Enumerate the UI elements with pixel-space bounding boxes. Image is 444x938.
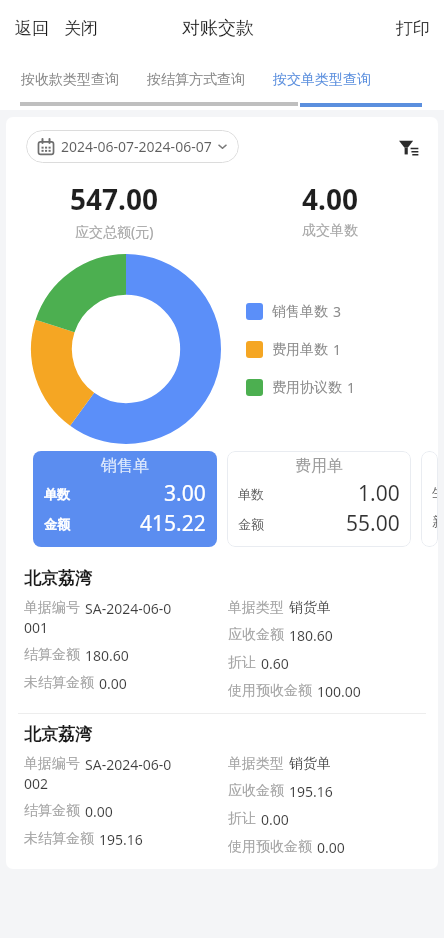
button[interactable]: 费用单: [227, 451, 411, 547]
button[interactable]: 按交单类型查询: [270, 63, 374, 97]
staticText: 195.16: [289, 782, 333, 801]
button[interactable]: 按结算方式查询: [144, 63, 248, 97]
staticText: 单据类型: [228, 755, 284, 773]
button[interactable]: Filter: [390, 129, 426, 165]
button[interactable]: 北京荔湾: [6, 558, 438, 713]
staticText: 单数: [238, 486, 264, 502]
button[interactable]: 关闭: [61, 11, 101, 46]
staticText: 金额: [44, 516, 70, 532]
staticText: 单据编号: [24, 755, 80, 773]
staticText: SA-2024-06-0: [85, 599, 172, 618]
staticText: 销货单: [289, 599, 331, 617]
staticText: 费用协议数: [272, 379, 342, 397]
staticText: 4.00: [302, 180, 358, 218]
staticText: 单数: [44, 486, 70, 502]
staticText: 100.00: [317, 682, 361, 701]
staticText: 金额: [238, 516, 264, 532]
staticText: 费用单: [238, 456, 400, 476]
staticText: 415.22: [140, 509, 206, 538]
staticText: 180.60: [85, 646, 129, 665]
staticText: 195.16: [99, 830, 143, 849]
staticText: 销货单: [289, 755, 331, 773]
staticText: 180.60: [289, 626, 333, 645]
staticText: 单据类型: [228, 599, 284, 617]
staticText: 应交总额(元): [75, 222, 154, 241]
staticText: 关闭: [64, 18, 98, 39]
button[interactable]: 按收款类型查询: [18, 63, 122, 97]
button[interactable]: 打印: [382, 9, 444, 48]
staticText: 返回: [15, 18, 49, 39]
staticText: 3: [333, 302, 342, 321]
staticText: 55.00: [346, 509, 400, 538]
staticText: 1: [347, 378, 356, 397]
staticText: 1: [333, 340, 342, 359]
staticText: 生: [432, 484, 438, 500]
staticText: 按结算方式查询: [147, 71, 245, 89]
staticText: 3.00: [164, 479, 206, 508]
button[interactable]: 生: [421, 451, 438, 547]
staticText: 使用预收金额: [228, 838, 312, 856]
staticText: 折让: [228, 654, 256, 672]
staticText: 未结算金额: [24, 830, 94, 848]
staticText: 0.60: [261, 654, 289, 673]
staticText: 0.00: [85, 802, 113, 821]
staticText: 新: [432, 513, 438, 529]
staticText: 折让: [228, 810, 256, 828]
staticText: 北京荔湾: [24, 724, 92, 745]
staticText: 2024-06-07-2024-06-07: [61, 137, 212, 156]
staticText: 结算金额: [24, 802, 80, 820]
staticText: 1.00: [358, 479, 400, 508]
staticText: 对账交款: [182, 17, 254, 40]
staticText: 北京荔湾: [24, 568, 92, 589]
staticText: 0.00: [99, 674, 127, 693]
staticText: 547.00: [70, 180, 158, 218]
staticText: 按交单类型查询: [273, 71, 371, 89]
staticText: 销售单数: [272, 303, 328, 321]
staticText: 002: [24, 774, 49, 793]
staticText: 结算金额: [24, 646, 80, 664]
staticText: 应收金额: [228, 782, 284, 800]
staticText: 未结算金额: [24, 674, 94, 692]
staticText: 打印: [396, 18, 430, 39]
button[interactable]: 返回: [12, 11, 52, 46]
staticText: 销售单: [44, 456, 206, 476]
button[interactable]: 2024-06-07-2024-06-07: [26, 130, 239, 163]
staticText: 费用单数: [272, 341, 328, 359]
staticText: 0.00: [317, 838, 345, 857]
staticText: 按收款类型查询: [21, 71, 119, 89]
button[interactable]: 北京荔湾: [6, 714, 438, 869]
staticText: 应收金额: [228, 626, 284, 644]
button[interactable]: 销售单: [33, 451, 217, 547]
staticText: 成交单数: [302, 222, 358, 240]
staticText: 单据编号: [24, 599, 80, 617]
staticText: SA-2024-06-0: [85, 755, 172, 774]
staticText: 001: [24, 618, 49, 637]
staticText: 使用预收金额: [228, 682, 312, 700]
staticText: 0.00: [261, 810, 289, 829]
